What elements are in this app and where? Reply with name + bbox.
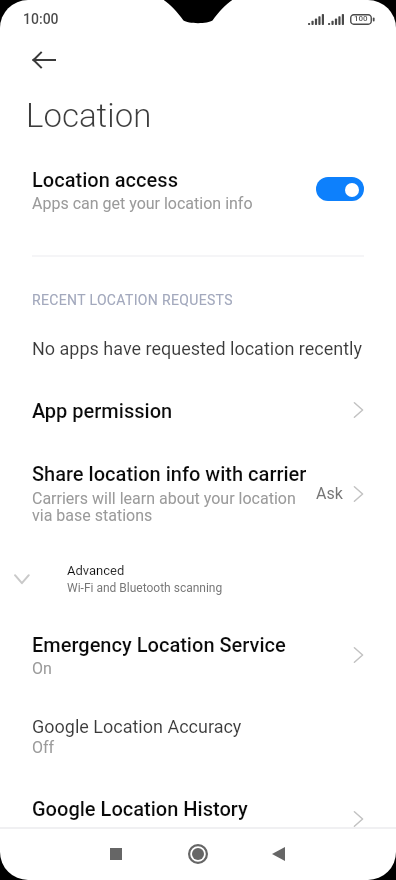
staticText: Share location info with carrier <box>32 462 307 485</box>
staticText: Location access <box>32 168 178 191</box>
button[interactable]: Emergency Location Service <box>0 622 396 684</box>
staticText: Google Location Accuracy <box>32 716 242 737</box>
button[interactable]: Location access <box>0 156 396 222</box>
staticText: 100 <box>354 14 368 23</box>
staticText: Carriers will learn about your location <box>32 489 296 508</box>
staticText: Off <box>32 738 55 757</box>
button[interactable]: Share location info with carrier <box>0 452 396 534</box>
staticText: Google Location History <box>32 797 248 820</box>
button[interactable]: Google Location Accuracy <box>0 706 396 766</box>
staticText: via base stations <box>32 506 153 525</box>
button[interactable]: Google Location History <box>0 786 396 830</box>
staticText: Apps can get your location info <box>32 194 253 213</box>
staticText: RECENT LOCATION REQUESTS <box>32 292 233 308</box>
button[interactable]: Home <box>174 830 222 878</box>
button[interactable]: Back <box>254 830 302 878</box>
staticText: Wi-Fi and Bluetooth scanning <box>67 581 223 595</box>
button[interactable]: Toggle location access <box>316 177 364 201</box>
staticText: Emergency Location Service <box>32 633 286 656</box>
staticText: On <box>32 659 52 678</box>
staticText: Location <box>26 96 152 135</box>
button[interactable]: App permission <box>0 388 396 432</box>
staticText: Advanced <box>67 563 125 578</box>
button[interactable]: Back <box>20 36 68 84</box>
staticText: App permission <box>32 399 173 422</box>
staticText: 10:00 <box>23 11 59 27</box>
button[interactable]: Advanced <box>0 552 396 602</box>
staticText: No apps have requested location recently <box>32 338 362 359</box>
staticText: Ask <box>316 484 343 503</box>
button[interactable]: Recent apps <box>92 830 140 878</box>
